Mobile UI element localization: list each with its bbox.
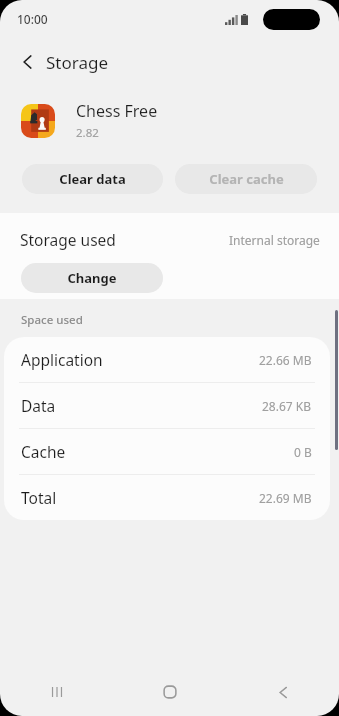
button[interactable]: Recent apps xyxy=(0,668,113,716)
staticText: 10:00 xyxy=(17,11,48,27)
button[interactable]: Data xyxy=(4,383,330,428)
staticText: 0 B xyxy=(294,444,312,460)
button[interactable]: Cache xyxy=(4,429,330,474)
button[interactable]: Back xyxy=(10,44,46,80)
staticText: 28.67 KB xyxy=(262,398,312,414)
staticText: Storage used xyxy=(20,229,116,250)
staticText: Internal storage xyxy=(229,232,320,248)
button[interactable]: Home xyxy=(113,668,226,716)
staticText: Total xyxy=(21,487,57,508)
staticText: Space used xyxy=(21,312,83,328)
staticText: 22.66 MB xyxy=(259,352,312,368)
staticText: Application xyxy=(21,349,103,370)
button[interactable]: Clear cache xyxy=(175,164,317,194)
button[interactable]: Total xyxy=(4,475,330,520)
staticText: Data xyxy=(21,395,56,416)
staticText: Change xyxy=(67,269,117,287)
staticText: 2.82 xyxy=(76,125,99,141)
staticText: Clear data xyxy=(59,170,126,188)
staticText: Clear cache xyxy=(209,170,284,188)
button[interactable]: Back xyxy=(226,668,339,716)
staticText: Storage xyxy=(46,51,109,74)
button[interactable]: Clear data xyxy=(22,164,163,194)
staticText: Cache xyxy=(21,441,66,462)
button[interactable]: Change xyxy=(21,263,163,293)
button[interactable]: Application xyxy=(4,337,330,382)
staticText: 22.69 MB xyxy=(259,490,312,506)
staticText: Chess Free xyxy=(76,100,158,122)
